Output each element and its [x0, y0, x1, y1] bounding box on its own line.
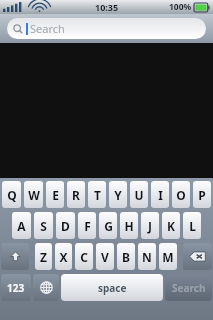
button[interactable]: J: [141, 212, 159, 239]
staticText: M: [162, 249, 174, 265]
button[interactable]: T: [88, 181, 106, 208]
button[interactable]: C: [75, 243, 93, 270]
staticText: P: [198, 187, 206, 203]
staticText: X: [59, 249, 68, 265]
button[interactable]: D: [56, 212, 75, 239]
staticText: Search: [30, 21, 65, 36]
button[interactable]: A: [12, 212, 31, 239]
button[interactable]: X: [55, 243, 72, 270]
button[interactable]: N: [138, 243, 156, 270]
staticText: D: [61, 218, 70, 234]
button[interactable]: Change keyboard: [33, 274, 59, 301]
staticText: 100%: [169, 1, 192, 13]
button[interactable]: R: [67, 181, 85, 208]
staticText: space: [98, 281, 127, 295]
button[interactable]: G: [99, 212, 117, 239]
staticText: Y: [114, 187, 122, 203]
staticText: F: [84, 218, 91, 234]
staticText: O: [176, 187, 186, 203]
staticText: Z: [40, 249, 47, 265]
button[interactable]: K: [162, 212, 180, 239]
button[interactable]: P: [193, 181, 211, 208]
button[interactable]: M: [159, 243, 177, 270]
staticText: 123: [7, 281, 25, 295]
button[interactable]: Search: [165, 274, 212, 301]
button[interactable]: B: [117, 243, 135, 270]
staticText: N: [142, 249, 152, 265]
staticText: T: [94, 187, 101, 203]
button[interactable]: Y: [109, 181, 127, 208]
staticText: S: [40, 218, 47, 234]
button[interactable]: W: [24, 181, 43, 208]
button[interactable]: V: [96, 243, 114, 270]
button[interactable]: H: [120, 212, 138, 239]
button[interactable]: 123: [1, 274, 31, 301]
staticText: I: [158, 187, 163, 203]
staticText: L: [189, 218, 196, 234]
staticText: J: [148, 218, 152, 234]
button[interactable]: I: [151, 181, 169, 208]
staticText: E: [52, 187, 59, 203]
staticText: A: [17, 218, 26, 234]
button[interactable]: Z: [35, 243, 52, 270]
staticText: R: [72, 187, 80, 203]
staticText: C: [80, 249, 88, 265]
button[interactable]: S: [34, 212, 53, 239]
button[interactable]: L: [183, 212, 201, 239]
staticText: W: [28, 187, 40, 203]
staticText: Search: [172, 281, 206, 295]
button[interactable]: space: [61, 274, 163, 301]
staticText: K: [167, 218, 175, 234]
button[interactable]: F: [78, 212, 96, 239]
staticText: U: [134, 187, 144, 203]
button[interactable]: E: [46, 181, 64, 208]
staticText: Q: [7, 187, 17, 203]
button[interactable]: Backspace: [183, 243, 212, 270]
button[interactable]: Search: [7, 18, 206, 39]
staticText: 10:35: [95, 1, 119, 13]
staticText: B: [122, 249, 130, 265]
button[interactable]: Q: [2, 181, 21, 208]
button[interactable]: U: [130, 181, 148, 208]
button[interactable]: O: [172, 181, 190, 208]
staticText: H: [124, 218, 134, 234]
staticText: V: [101, 249, 109, 265]
staticText: G: [104, 218, 113, 234]
button[interactable]: Shift: [1, 243, 29, 270]
